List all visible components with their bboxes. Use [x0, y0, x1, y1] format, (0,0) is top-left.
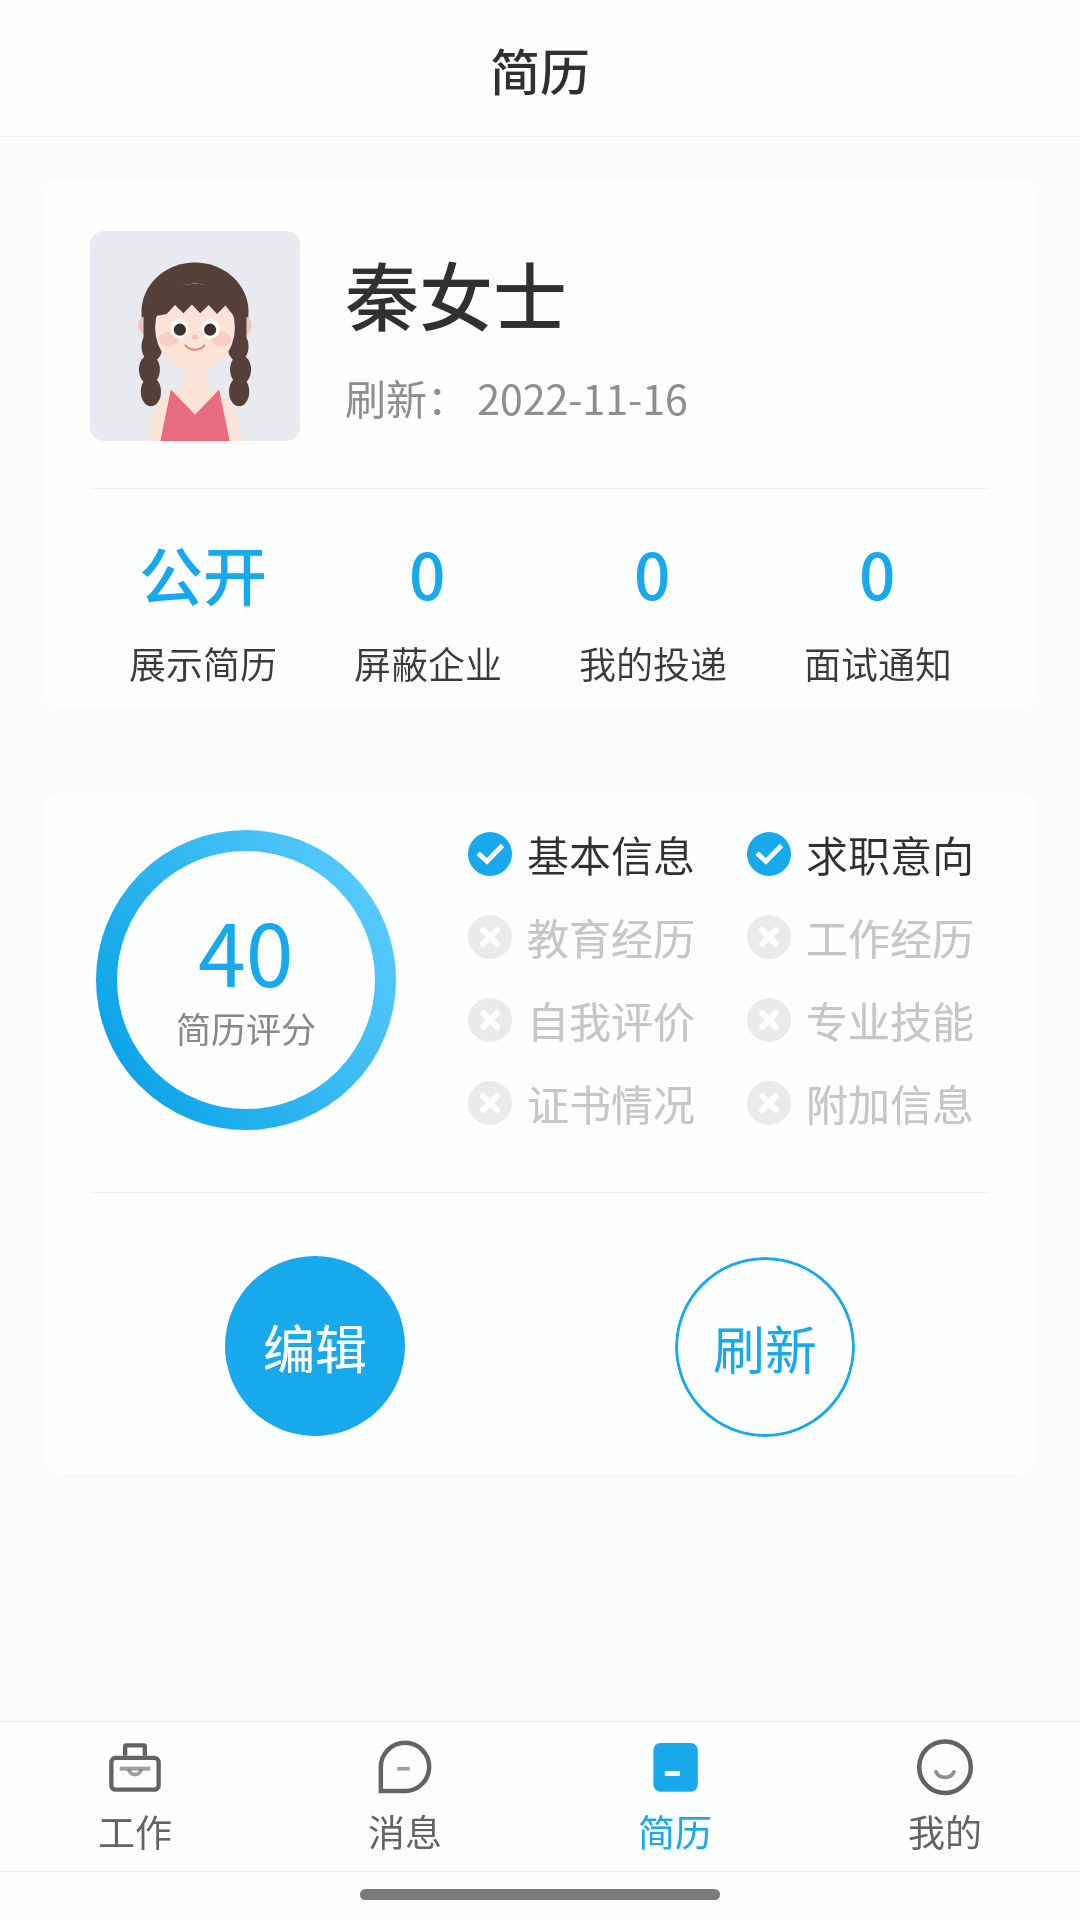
staticText: 40 — [198, 887, 294, 1012]
other: Jobs — [105, 1736, 165, 1796]
staticText: 求职意向 — [806, 823, 975, 884]
button[interactable]: 0 — [540, 526, 765, 690]
staticText: 刷新 — [713, 1310, 818, 1385]
staticText: 0 — [859, 526, 896, 619]
staticText: 简历评分 — [176, 1002, 317, 1053]
staticText: 简历 — [638, 1804, 712, 1858]
staticText: 证书情况 — [527, 1072, 696, 1133]
button[interactable]: My profile — [810, 1722, 1080, 1871]
button[interactable]: 自我评价 — [468, 978, 747, 1061]
staticText: 屏蔽企业 — [354, 636, 502, 690]
staticText: 自我评价 — [527, 989, 696, 1050]
button[interactable]: Resume — [540, 1722, 810, 1871]
button[interactable]: 编辑 — [225, 1256, 405, 1436]
button[interactable]: Messages — [270, 1722, 540, 1871]
button[interactable]: 求职意向 — [747, 812, 975, 895]
staticText: 0 — [409, 526, 446, 619]
button[interactable]: 专业技能 — [747, 978, 975, 1061]
button[interactable]: 证书情况 — [468, 1061, 747, 1144]
staticText: 教育经历 — [527, 906, 696, 967]
button[interactable]: 工作经历 — [747, 895, 975, 978]
button[interactable]: Jobs — [0, 1722, 270, 1871]
button[interactable]: 公开 — [90, 526, 315, 690]
staticText: 基本信息 — [527, 823, 696, 884]
button[interactable]: 0 — [315, 526, 540, 690]
staticText: 秦女士 — [345, 239, 567, 346]
staticText: 简历 — [490, 33, 590, 105]
staticText: 公开 — [139, 526, 267, 619]
staticText: 编辑 — [263, 1309, 368, 1384]
button[interactable]: 附加信息 — [747, 1061, 975, 1144]
staticText: 附加信息 — [806, 1072, 975, 1133]
staticText: 面试通知 — [804, 636, 952, 690]
button[interactable]: 0 — [765, 526, 990, 690]
other: Profile photo — [90, 231, 300, 441]
staticText: 消息 — [368, 1804, 442, 1858]
staticText: 工作经历 — [806, 906, 975, 967]
staticText: 0 — [634, 526, 671, 619]
other: Messages — [375, 1736, 435, 1796]
button[interactable]: 刷新 — [675, 1257, 855, 1437]
other: My profile — [915, 1736, 975, 1796]
staticText: 工作 — [98, 1804, 172, 1858]
other: Resume — [645, 1736, 705, 1796]
staticText: 刷新： 2022-11-16 — [345, 367, 688, 426]
staticText: 专业技能 — [806, 989, 975, 1050]
button[interactable]: 教育经历 — [468, 895, 747, 978]
staticText: 展示简历 — [129, 636, 277, 690]
button[interactable]: 基本信息 — [468, 812, 747, 895]
staticText: 我的 — [908, 1804, 982, 1858]
staticText: 我的投递 — [579, 636, 727, 690]
